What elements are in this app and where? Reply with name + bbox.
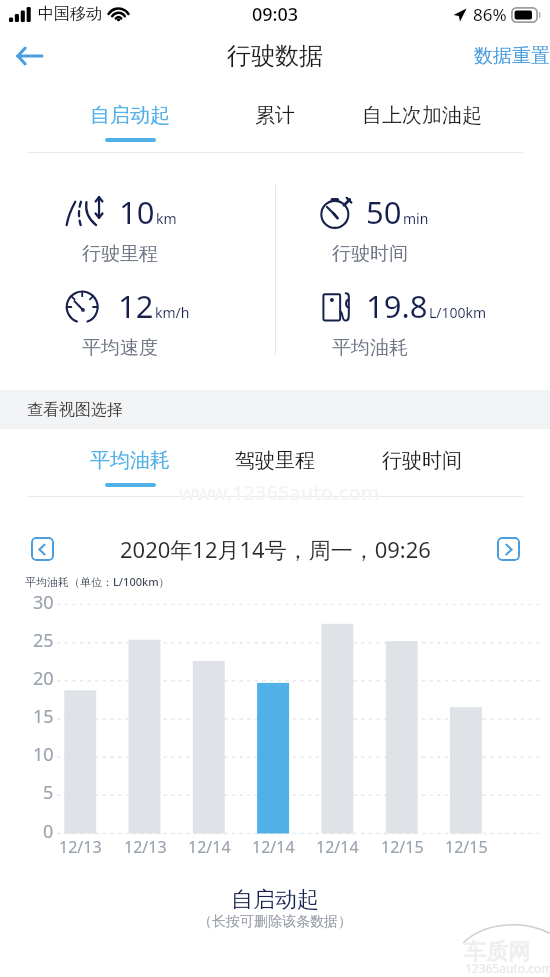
staticText: km/h	[155, 303, 190, 322]
button[interactable]: 自上次加油起	[349, 88, 495, 142]
staticText: 自启动起	[231, 886, 319, 914]
staticText: 12/13	[59, 836, 102, 858]
button[interactable]: 平均油耗	[57, 433, 203, 487]
staticText: 行驶里程	[82, 242, 158, 266]
button[interactable]: 驾驶里程	[202, 433, 348, 487]
staticText: 12/14	[188, 836, 231, 858]
staticText: 12/15	[381, 836, 424, 858]
staticText: 行驶时间	[332, 242, 408, 266]
staticText: 25	[33, 628, 54, 652]
staticText: 累计	[255, 103, 295, 128]
button[interactable]: 自启动起	[57, 88, 203, 142]
staticText: 平均油耗	[332, 336, 408, 360]
staticText: 09:03	[252, 2, 299, 27]
staticText: 0	[43, 819, 54, 843]
staticText: 平均油耗（单位：L/100km）	[25, 574, 170, 589]
staticText: 5	[43, 780, 54, 804]
staticText: 行驶数据	[227, 41, 323, 71]
staticText: 12	[118, 285, 154, 323]
staticText: 20	[33, 666, 54, 690]
staticText: 中国移动	[38, 4, 102, 24]
staticText: km	[156, 209, 177, 228]
staticText: L/100km	[429, 303, 487, 322]
staticText: （长按可删除该条数据）	[198, 913, 352, 931]
staticText: 自启动起	[90, 103, 170, 128]
staticText: 平均速度	[82, 336, 158, 360]
staticText: 12365auto.com	[465, 960, 550, 976]
staticText: 查看视图选择	[27, 400, 123, 420]
staticText: min	[403, 209, 429, 228]
staticText: 12/13	[124, 836, 167, 858]
button[interactable]: 累计	[202, 88, 348, 142]
staticText: www.12365auto.com	[179, 479, 380, 506]
staticText: 30	[33, 590, 54, 614]
staticText: 行驶时间	[382, 448, 462, 473]
staticText: 数据重置	[474, 44, 550, 68]
button[interactable]: Back	[11, 38, 47, 74]
staticText: 12/14	[252, 836, 295, 858]
staticText: 2020年12月14号，周一，09:26	[120, 534, 431, 564]
staticText: 平均油耗	[90, 448, 170, 473]
staticText: 15	[33, 704, 54, 728]
button[interactable]: 行驶时间	[349, 433, 495, 487]
staticText: 车质网	[464, 938, 530, 966]
button[interactable]: 数据重置	[474, 34, 550, 78]
staticText: 自上次加油起	[362, 103, 482, 128]
staticText: 10	[33, 742, 54, 766]
staticText: 19.8	[366, 285, 428, 323]
staticText: 驾驶里程	[235, 448, 315, 473]
staticText: 12/14	[316, 836, 359, 858]
staticText: 10	[119, 191, 155, 229]
button[interactable]: Next	[497, 537, 520, 561]
staticText: 50	[366, 191, 402, 229]
staticText: 86%	[473, 3, 507, 26]
button[interactable]: Previous	[31, 537, 54, 561]
staticText: 12/15	[445, 836, 488, 858]
